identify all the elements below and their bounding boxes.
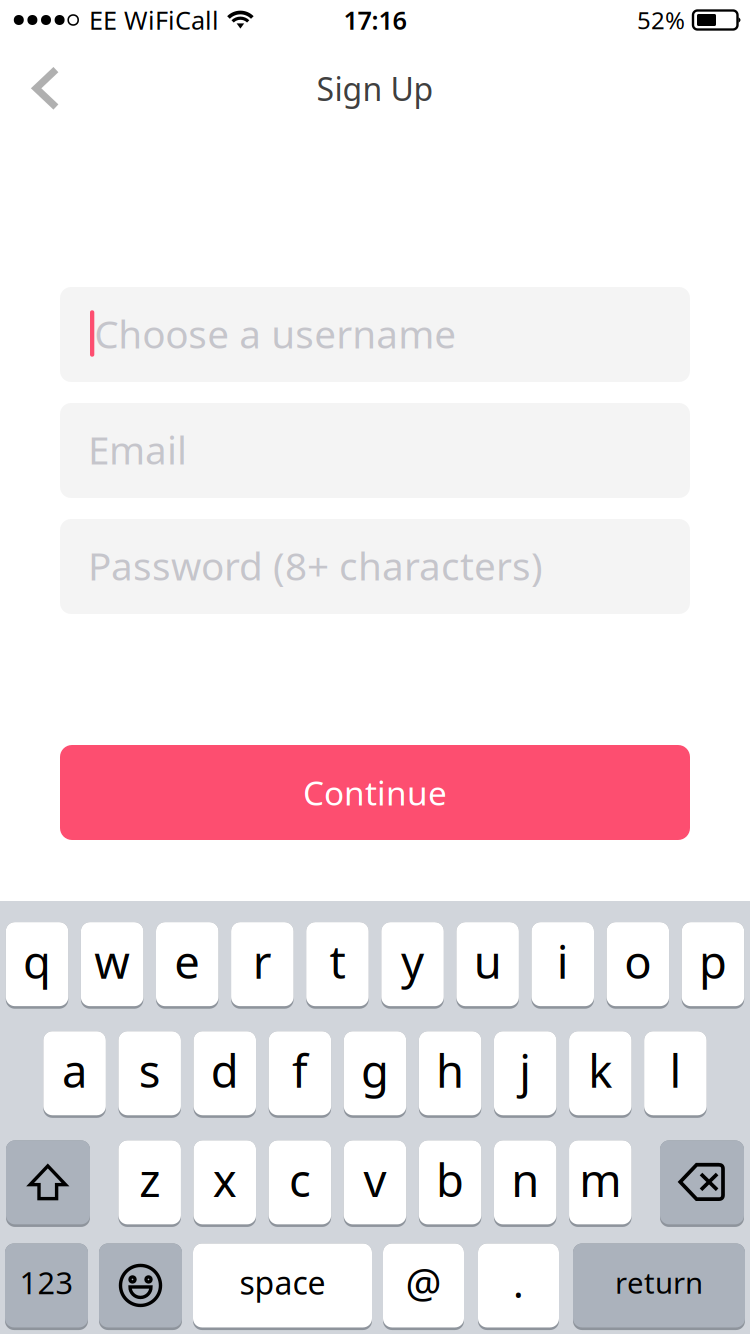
button[interactable]: e (156, 921, 218, 1007)
staticText: m (579, 1149, 621, 1209)
staticText: x (213, 1149, 237, 1209)
staticText: Continue (303, 770, 447, 815)
button[interactable]: v (344, 1139, 406, 1226)
staticText: Sign Up (316, 67, 433, 110)
button[interactable]: i (531, 921, 594, 1007)
button[interactable]: l (644, 1030, 707, 1117)
staticText: return (615, 1263, 703, 1302)
button[interactable]: s (118, 1030, 181, 1117)
staticText: l (669, 1040, 681, 1100)
staticText: u (474, 931, 502, 991)
staticText: e (174, 931, 200, 991)
button[interactable]: Shift (6, 1139, 90, 1226)
button[interactable]: x (193, 1139, 256, 1226)
staticText: . (513, 1256, 524, 1309)
staticText: f (292, 1040, 308, 1100)
staticText: o (624, 931, 651, 991)
staticText: d (211, 1040, 239, 1100)
staticText: a (62, 1040, 87, 1100)
button[interactable]: h (419, 1030, 481, 1117)
button[interactable]: . (478, 1242, 559, 1329)
button[interactable]: f (269, 1030, 331, 1117)
button[interactable]: Email (60, 403, 690, 498)
button[interactable]: a (43, 1030, 106, 1117)
staticText: b (436, 1149, 464, 1209)
button[interactable]: y (381, 921, 444, 1007)
staticText: h (436, 1040, 464, 1100)
button[interactable]: Delete (660, 1139, 744, 1226)
button[interactable]: Choose a username (60, 287, 690, 382)
staticText: 123 (19, 1262, 73, 1303)
button[interactable]: t (306, 921, 369, 1007)
staticText: p (699, 931, 727, 991)
staticText: z (139, 1149, 160, 1209)
staticText: c (289, 1149, 311, 1209)
button[interactable]: b (419, 1139, 481, 1226)
staticText: @ (405, 1256, 441, 1309)
button[interactable]: u (456, 921, 519, 1007)
button[interactable]: z (118, 1139, 181, 1226)
staticText: g (361, 1040, 389, 1100)
staticText: w (94, 931, 130, 991)
staticText: v (363, 1149, 386, 1209)
button[interactable]: @ (383, 1242, 464, 1329)
staticText: space (239, 1261, 325, 1304)
staticText: 52% (637, 4, 685, 36)
button[interactable]: 123 (5, 1242, 88, 1329)
button[interactable]: Emoji (99, 1242, 182, 1329)
button[interactable]: Continue (60, 745, 690, 840)
staticText: j (519, 1040, 531, 1100)
staticText: t (329, 931, 345, 991)
button[interactable]: q (6, 921, 68, 1007)
staticText: i (557, 931, 569, 991)
button[interactable]: d (194, 1030, 256, 1117)
button[interactable]: k (569, 1030, 632, 1117)
staticText: n (511, 1149, 539, 1209)
button[interactable]: c (269, 1139, 331, 1226)
staticText: 17:16 (343, 3, 406, 37)
button[interactable]: return (573, 1242, 745, 1329)
staticText: y (401, 931, 424, 991)
button[interactable]: o (607, 921, 669, 1007)
staticText: q (23, 931, 51, 991)
button[interactable]: g (344, 1030, 406, 1117)
staticText: k (588, 1040, 612, 1100)
staticText: Choose a username (94, 308, 456, 359)
button[interactable]: j (494, 1030, 556, 1117)
staticText: Email (88, 424, 187, 475)
button[interactable]: w (81, 921, 143, 1007)
staticText: EE WiFiCall (89, 3, 219, 37)
button[interactable]: Back (0, 40, 88, 143)
button[interactable]: space (193, 1242, 372, 1329)
staticText: s (139, 1040, 161, 1100)
staticText: r (253, 931, 272, 991)
staticText: Password (8+ characters) (88, 540, 543, 591)
button[interactable]: n (494, 1139, 556, 1226)
button[interactable]: r (231, 921, 294, 1007)
button[interactable]: p (682, 921, 744, 1007)
button[interactable]: m (569, 1139, 631, 1226)
button[interactable]: Password (8+ characters) (60, 519, 690, 614)
